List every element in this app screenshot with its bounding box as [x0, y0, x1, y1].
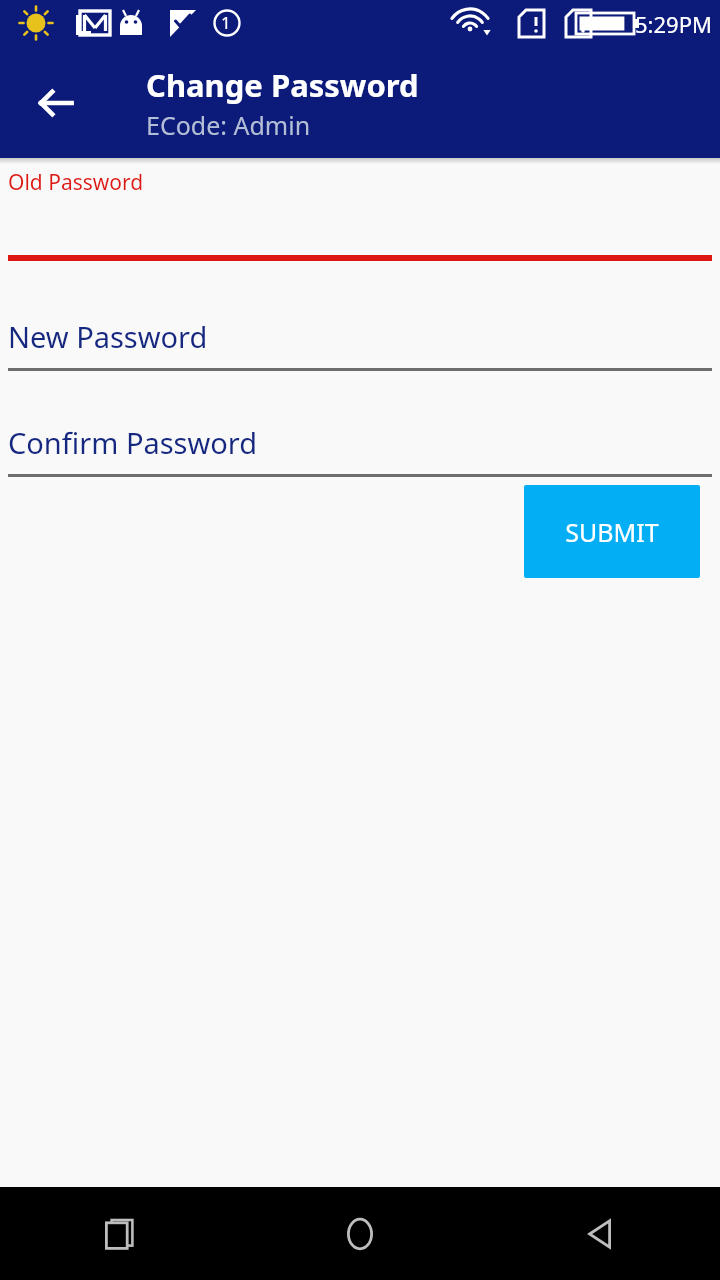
- staticText: 1: [221, 11, 231, 34]
- button[interactable]: Old Password: [0, 163, 720, 263]
- button[interactable]: Confirm Password: [0, 423, 720, 483]
- button[interactable]: Back: [480, 1187, 720, 1280]
- staticText: 5:29PM: [635, 9, 712, 39]
- button[interactable]: Recent apps: [0, 1187, 240, 1280]
- staticText: ECode: Admin: [146, 108, 311, 142]
- staticText: New Password: [8, 317, 208, 356]
- button[interactable]: New Password: [0, 317, 720, 377]
- button[interactable]: SUBMIT: [524, 485, 700, 578]
- staticText: Old Password: [8, 168, 144, 197]
- button[interactable]: Back: [16, 63, 96, 143]
- staticText: Confirm Password: [8, 423, 258, 462]
- staticText: SUBMIT: [565, 515, 659, 549]
- staticText: Change Password: [146, 64, 419, 106]
- button[interactable]: Home: [240, 1187, 480, 1280]
